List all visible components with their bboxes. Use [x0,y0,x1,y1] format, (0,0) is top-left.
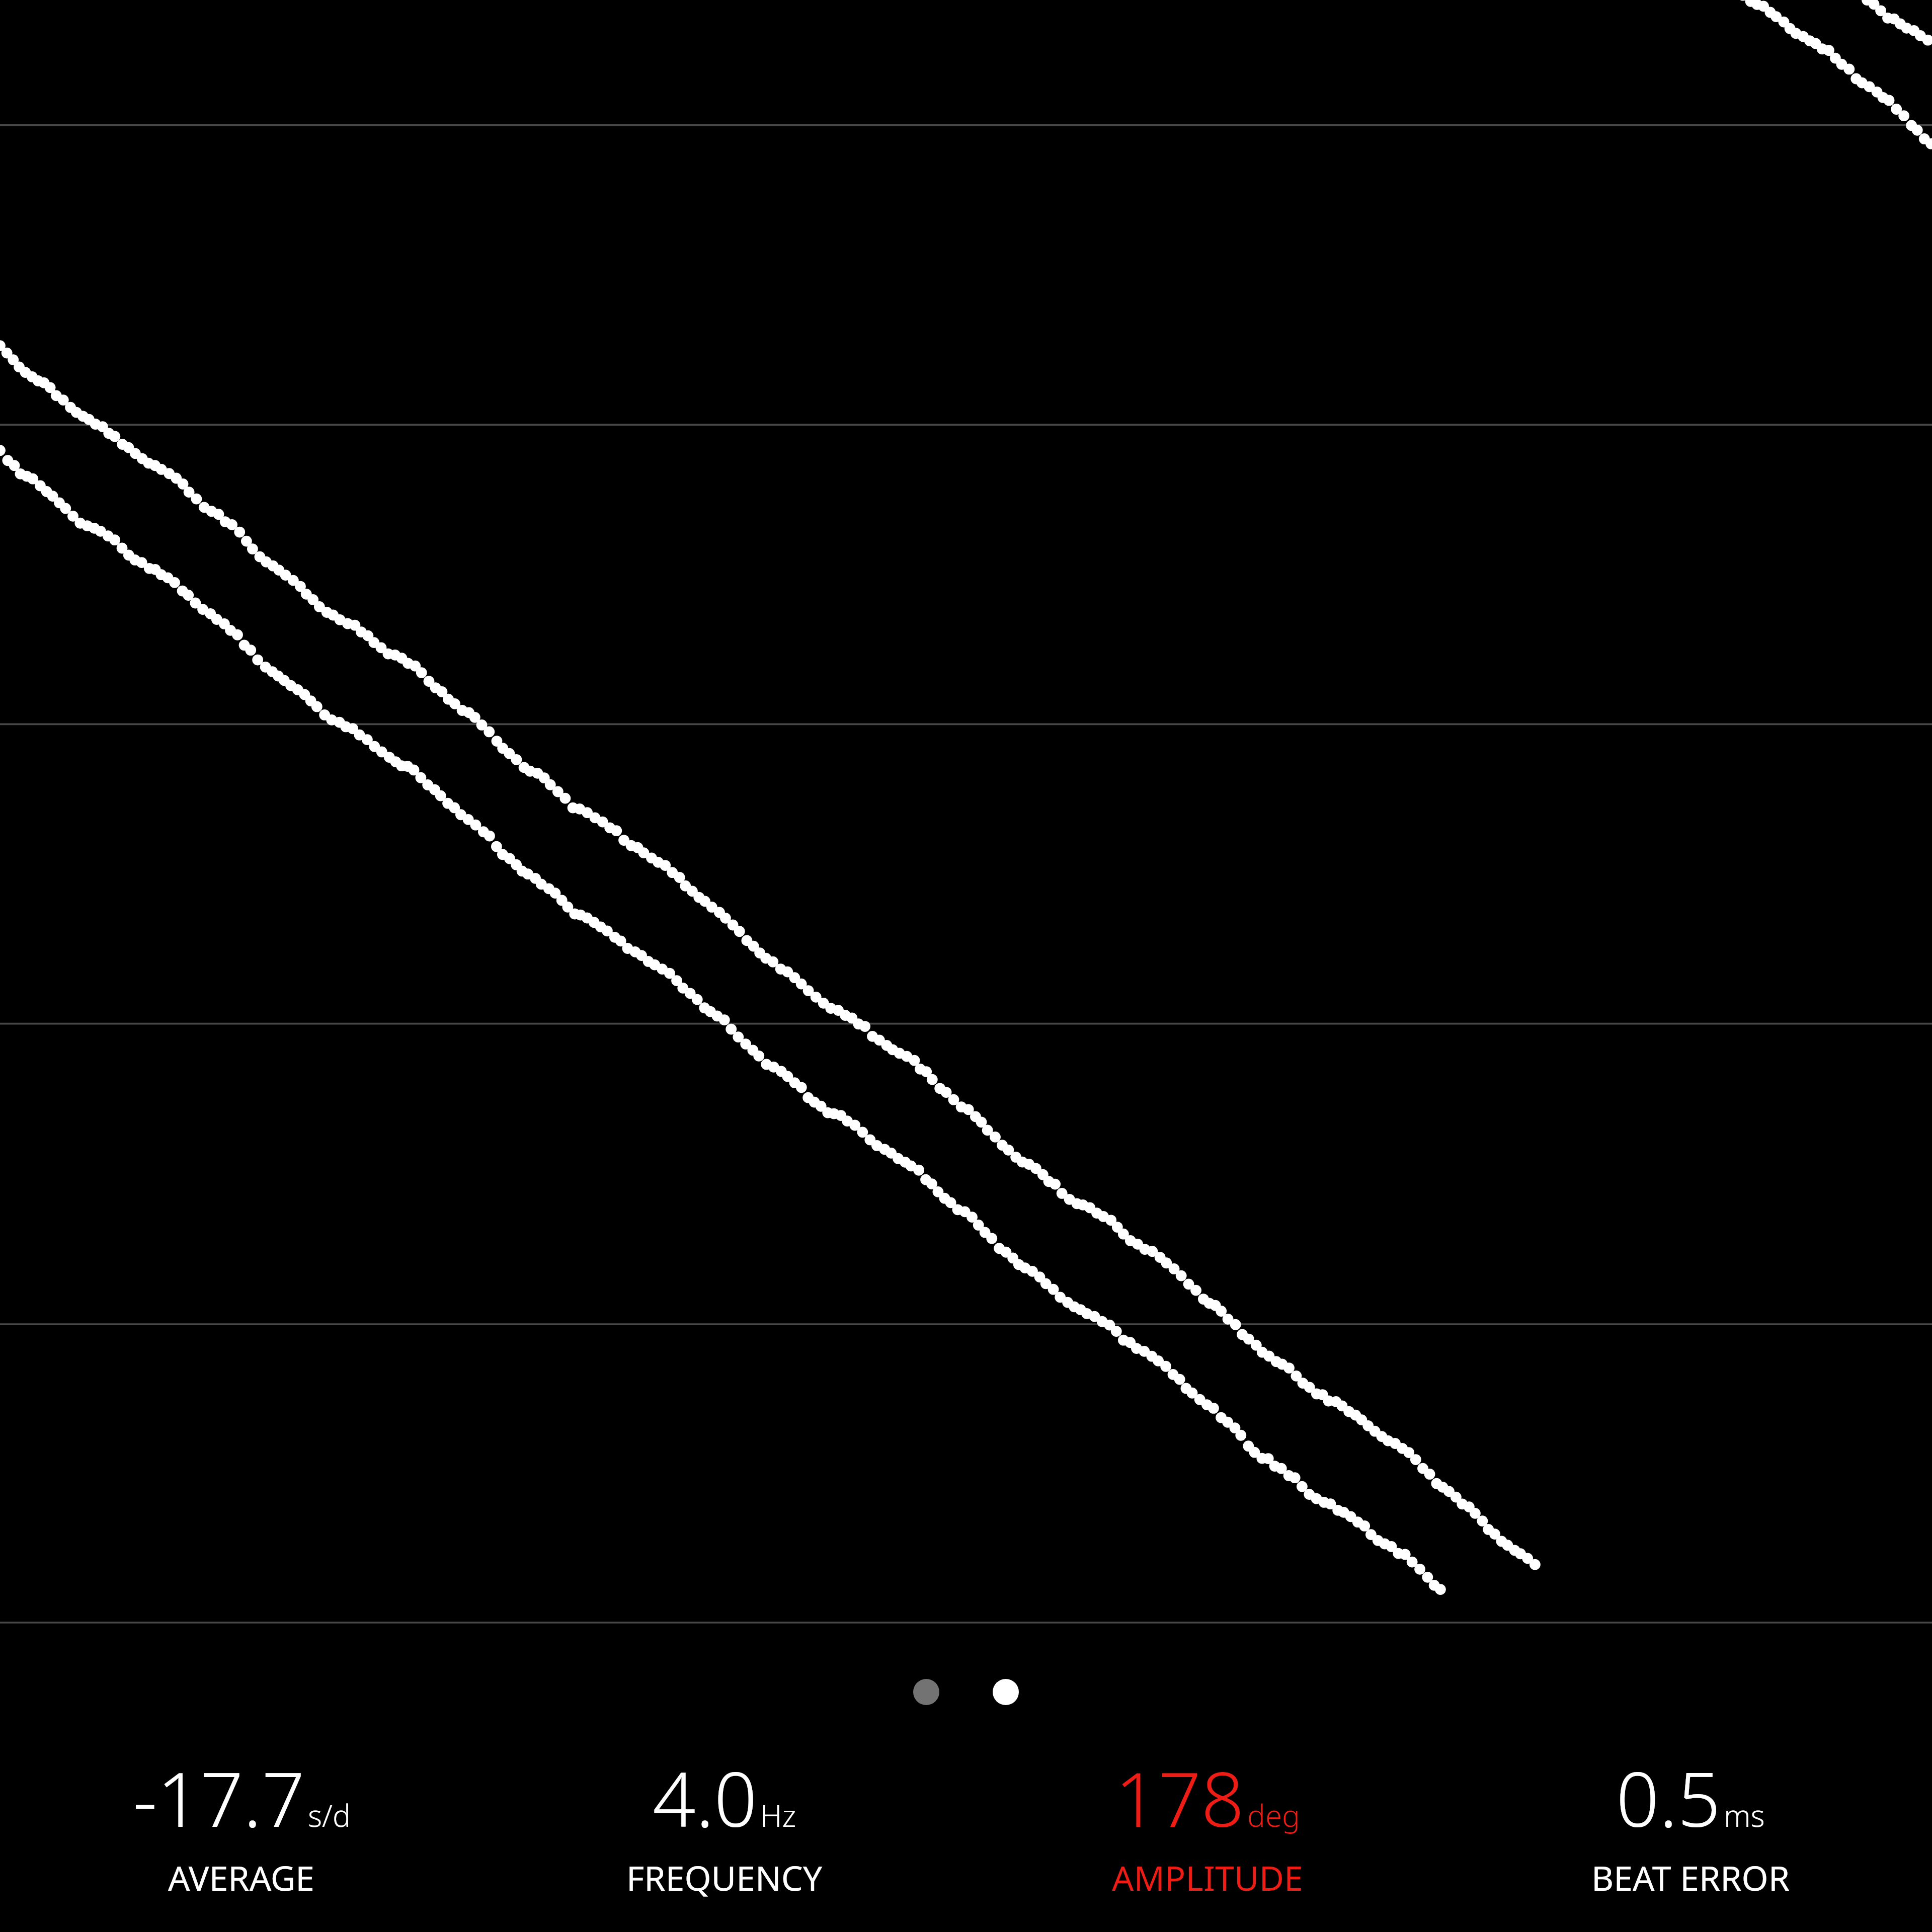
button[interactable]: -17.7 [0,1746,483,1901]
staticText: AVERAGE [168,1854,315,1901]
button[interactable]: 0.5 [1449,1746,1932,1901]
staticText: deg [1247,1795,1300,1836]
button[interactable]: Page 2, selected [993,1679,1019,1705]
staticText: 178 [1115,1746,1244,1849]
staticText: s/d [308,1795,351,1836]
button[interactable]: 4.0 [483,1746,966,1901]
button[interactable]: 178 [966,1746,1449,1901]
staticText: FREQUENCY [626,1854,823,1901]
staticText: -17.7 [133,1746,305,1849]
staticText: BEAT ERROR [1591,1854,1790,1901]
staticText: AMPLITUDE [1112,1854,1303,1901]
staticText: 0.5 [1616,1746,1721,1849]
staticText: ms [1724,1795,1765,1836]
staticText: 4.0 [653,1746,757,1849]
staticText: Hz [760,1795,796,1836]
button[interactable]: Page 1 [913,1679,939,1705]
